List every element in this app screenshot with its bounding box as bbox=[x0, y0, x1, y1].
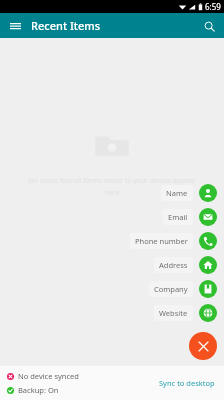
staticText: Email bbox=[168, 212, 188, 222]
button[interactable]: Sync to desktop bbox=[156, 375, 218, 391]
staticText: Address bbox=[159, 260, 188, 270]
button[interactable]: Search bbox=[199, 16, 219, 36]
button[interactable]: Close menu bbox=[189, 332, 217, 360]
staticText: Backup: On bbox=[18, 385, 59, 395]
staticText: Company bbox=[154, 284, 188, 294]
button[interactable]: Email bbox=[163, 208, 217, 226]
staticText: No items found! Items saved to your devi… bbox=[22, 176, 202, 197]
staticText: No device synced bbox=[18, 371, 79, 381]
button[interactable]: Address bbox=[154, 256, 217, 274]
staticText: Name bbox=[166, 188, 188, 198]
button[interactable]: Name bbox=[161, 184, 217, 202]
staticText: 6:59 bbox=[205, 1, 221, 12]
staticText: Sync to desktop bbox=[159, 378, 215, 388]
button[interactable]: Phone number bbox=[130, 232, 217, 250]
button[interactable]: Open navigation menu bbox=[5, 16, 25, 36]
button[interactable]: Company bbox=[149, 280, 217, 298]
button[interactable]: Website bbox=[154, 304, 217, 322]
staticText: Phone number bbox=[135, 236, 188, 246]
staticText: Website bbox=[159, 308, 188, 318]
staticText: Recent Items bbox=[31, 18, 101, 33]
